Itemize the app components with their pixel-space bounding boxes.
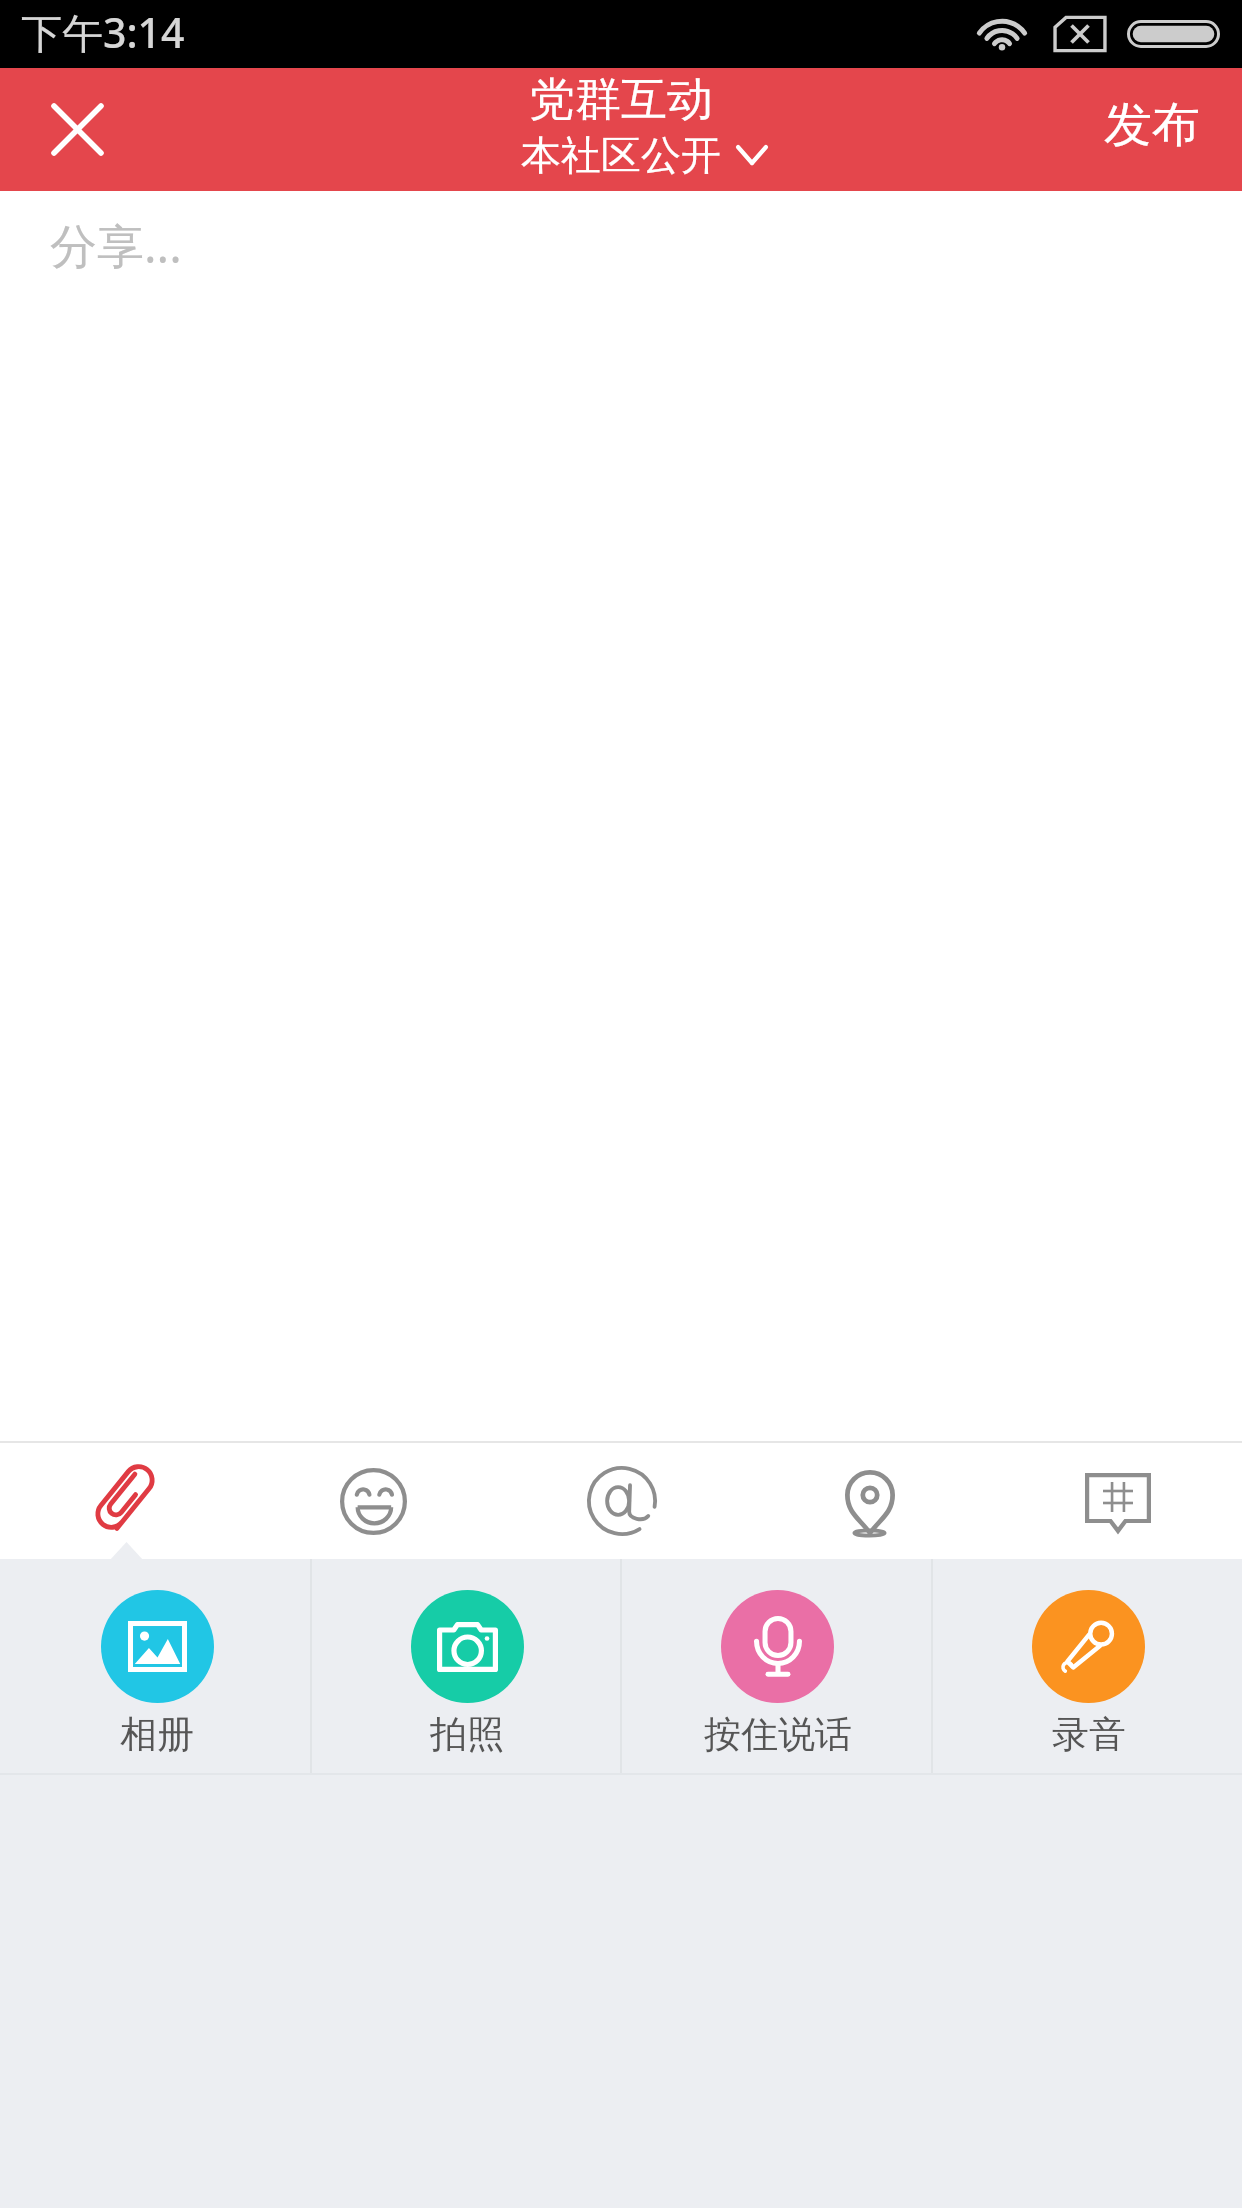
button[interactable]: Location [746,1443,994,1559]
staticText: 相册 [120,1711,194,1758]
button[interactable]: Emoji [249,1443,498,1559]
button[interactable]: 党群互动 [521,71,721,180]
button[interactable]: 录音 [933,1559,1242,1773]
button[interactable]: Mention [498,1443,746,1559]
staticText: 按住说话 [704,1711,852,1758]
staticText: 拍照 [430,1711,504,1758]
staticText: 分享... [50,213,182,277]
button[interactable]: 拍照 [312,1559,622,1773]
button[interactable]: 按住说话 [622,1559,933,1773]
button[interactable]: Close [0,68,154,191]
button[interactable]: Topic [994,1443,1242,1559]
button[interactable]: Attach [0,1443,249,1559]
staticText: 党群互动 [529,71,713,129]
staticText: 发布 [1104,95,1200,155]
staticText: 下午3:14 [21,4,185,60]
button[interactable]: 相册 [2,1559,312,1773]
staticText: 录音 [1052,1711,1126,1758]
button[interactable]: 发布 [1072,68,1242,191]
staticText: 本社区公开 [521,130,721,180]
